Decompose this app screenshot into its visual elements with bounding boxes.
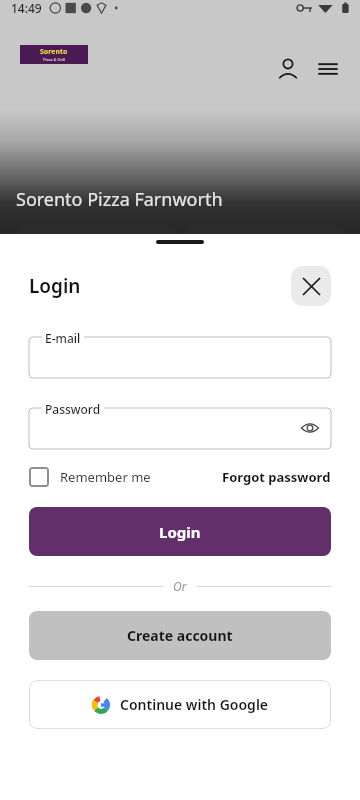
button[interactable]: Login [29, 507, 331, 556]
button[interactable]: Remember me [29, 467, 151, 487]
button[interactable]: Forgot password [222, 468, 331, 486]
button[interactable]: Create account [29, 611, 331, 660]
staticText: Create account [127, 626, 233, 645]
staticText: Sorento [40, 47, 68, 57]
button[interactable]: Sorento [20, 45, 88, 64]
button[interactable]: Menu [310, 51, 346, 87]
staticText: Password [45, 401, 101, 417]
staticText: Login [29, 273, 81, 299]
button[interactable]: Continue with Google [29, 680, 331, 729]
staticText: Pizza & Grill [43, 57, 66, 62]
staticText: Forgot password [222, 468, 331, 486]
staticText: 14:49 [11, 0, 42, 16]
staticText: Remember me [60, 468, 151, 486]
button[interactable]: Account [270, 51, 306, 87]
button[interactable]: Close [291, 266, 331, 306]
button[interactable]: Show password [297, 415, 323, 441]
staticText: Continue with Google [120, 695, 269, 714]
staticText: Sorento Pizza Farnworth [16, 187, 223, 212]
staticText: Login [159, 522, 201, 542]
staticText: E-mail [45, 330, 81, 346]
staticText: Or [173, 578, 187, 594]
